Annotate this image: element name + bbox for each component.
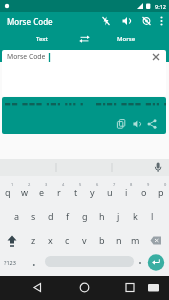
staticText: x [48,234,53,246]
staticText: t [74,186,78,198]
button[interactable] [0,276,57,300]
button[interactable]: ?123 [4,259,16,266]
staticText: 9:12 [155,3,166,10]
staticText: d [48,210,54,222]
staticText: 0 [164,182,167,187]
staticText: 6 [96,182,99,187]
staticText: s [31,210,36,222]
button[interactable] [120,120,136,134]
staticText: u [107,186,113,198]
staticText: q [5,186,11,198]
staticText: y [90,186,95,198]
staticText: m [131,234,140,246]
button[interactable]: p [152,182,169,202]
staticText: z [31,234,36,246]
button[interactable] [79,35,90,43]
staticText: k [133,210,138,222]
staticText: Morse [117,35,136,43]
staticText: v [82,234,87,246]
staticText: o [141,186,147,198]
staticText: 2 [28,182,31,187]
button[interactable]: q [0,182,16,202]
button[interactable]: i [118,182,135,202]
staticText: f [66,210,70,222]
staticText: l [151,210,154,222]
button[interactable]: x [42,233,59,247]
button[interactable]: m [127,233,144,247]
button[interactable]: a [8,209,25,223]
button[interactable]: Text [0,30,84,47]
button[interactable]: d [42,209,59,223]
button[interactable]: n [110,233,127,247]
button[interactable]: j [110,209,127,223]
button[interactable] [113,276,169,300]
button[interactable]: e [33,182,50,202]
staticText: g [82,210,88,222]
staticText: i [125,186,128,198]
button[interactable] [57,276,113,300]
button[interactable]: u [101,182,118,202]
button[interactable]: h [93,209,110,223]
button[interactable]: s [25,209,42,223]
staticText: 5 [79,182,82,187]
staticText: Morse Code [7,16,53,27]
button[interactable]: l [144,209,161,223]
staticText: 9 [147,182,150,187]
button[interactable]: f [59,209,76,223]
button[interactable] [136,120,151,134]
button[interactable]: r [50,182,67,202]
button[interactable]: w [16,182,33,202]
button[interactable]: c [59,233,76,247]
staticText: e [39,186,45,198]
staticText: Morse Code [7,52,46,61]
staticText: c [65,234,70,246]
staticText: h [99,210,105,222]
button[interactable]: Morse Code [2,50,166,96]
button[interactable]: v [76,233,93,247]
button[interactable]: b [93,233,110,247]
button[interactable]: t [67,182,84,202]
button[interactable] [99,12,169,30]
button[interactable] [151,120,166,134]
staticText: 1 [11,182,14,187]
staticText: p [158,186,164,198]
staticText: j [117,210,120,222]
button[interactable]: y [84,182,101,202]
staticText: 8 [130,182,133,187]
staticText: n [116,234,122,246]
staticText: Text [36,35,48,43]
staticText: 7 [113,182,116,187]
button[interactable]: z [25,233,42,247]
staticText: b [99,234,105,246]
staticText: w [21,186,29,198]
staticText: a [14,210,20,222]
button[interactable]: g [76,209,93,223]
button[interactable]: o [135,182,152,202]
staticText: r [57,186,61,198]
staticText: 4 [62,182,65,187]
staticText: 3 [45,182,48,187]
button[interactable]: k [127,209,144,223]
button[interactable]: Morse [84,30,169,47]
